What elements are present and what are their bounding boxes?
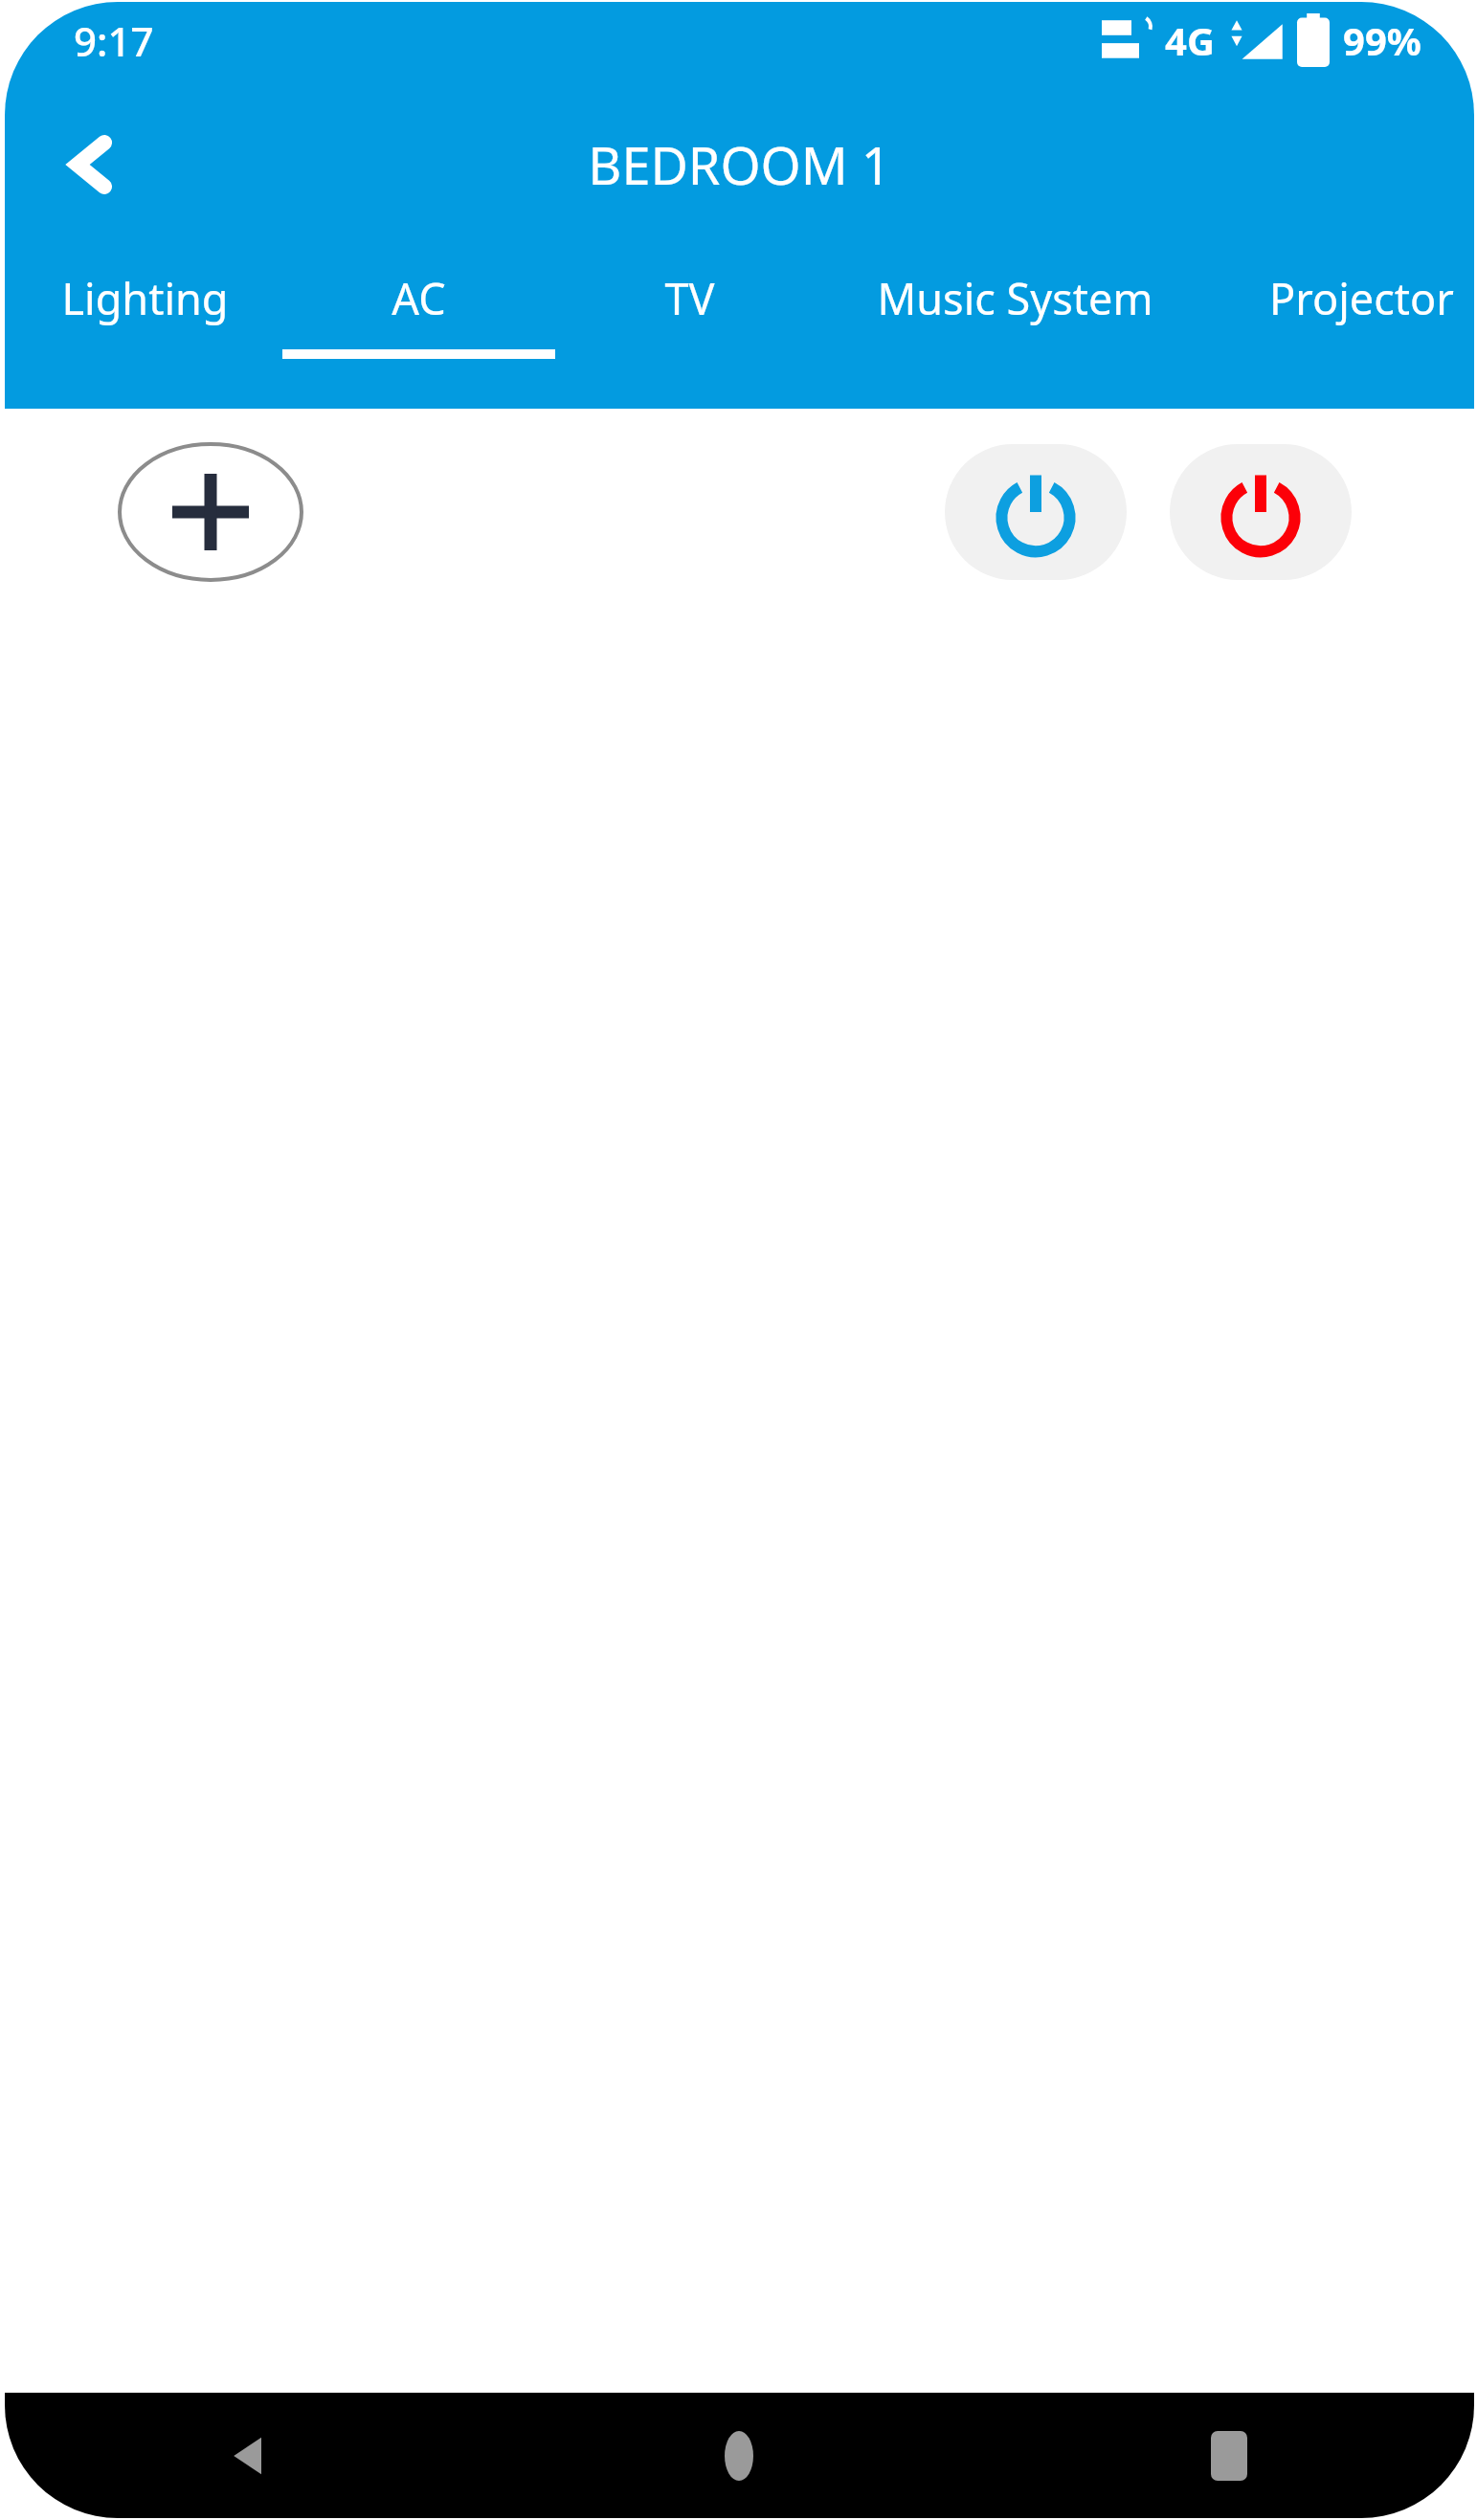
button[interactable]: Back [5,2393,494,2518]
button[interactable]: Add device [120,444,302,580]
staticText: 9:17 [74,13,154,68]
button[interactable]: Home [494,2393,984,2518]
button[interactable]: AC [281,236,555,359]
button[interactable]: Power off [1170,444,1352,580]
staticText: Music System [877,269,1153,327]
button[interactable]: Projector [1242,236,1474,359]
staticText: Lighting [61,269,229,327]
button[interactable]: Recent apps [984,2393,1474,2518]
staticText: AC [392,269,446,327]
staticText: BEDROOM 1 [588,129,891,200]
button[interactable]: Lighting [6,236,283,359]
staticText: TV [664,269,715,327]
staticText: Projector [1269,269,1454,327]
button[interactable]: TV [555,236,823,359]
button[interactable]: Back [34,107,148,222]
staticText: 4G [1165,14,1215,66]
staticText: 99% [1343,14,1421,66]
button[interactable]: Power on [945,444,1127,580]
button[interactable]: Music System [823,236,1206,359]
